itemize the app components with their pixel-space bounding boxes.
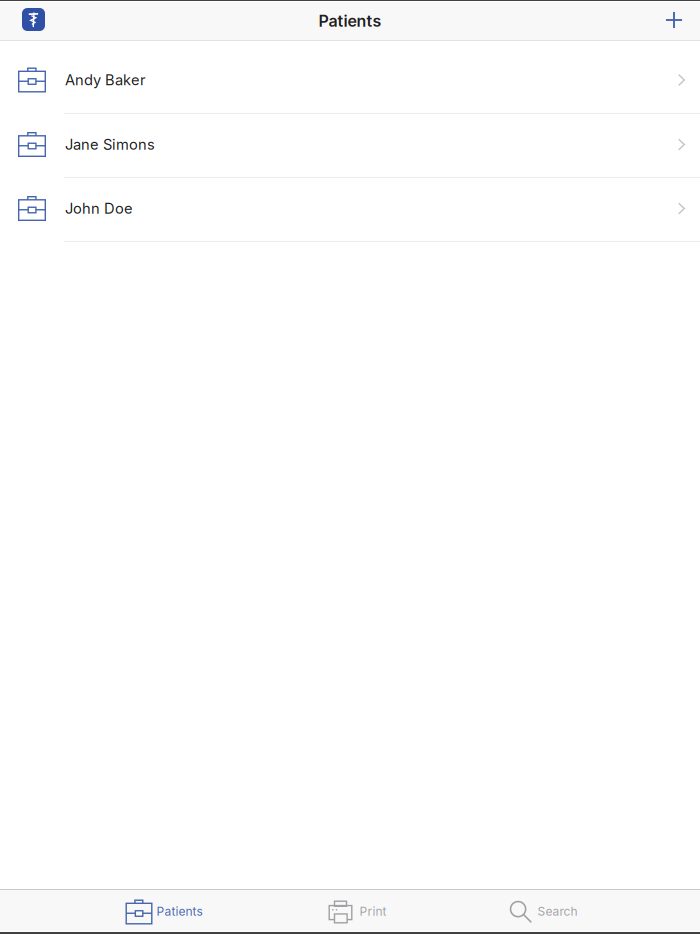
staticText: John Doe [65,200,133,217]
button[interactable]: Search [508,890,577,931]
button[interactable]: Medical Records [0,2,45,40]
button[interactable]: John Doe [0,178,700,242]
staticText: Andy Baker [65,71,146,89]
staticText: Search [537,904,577,919]
button[interactable]: Jane Simons [0,114,700,178]
button[interactable]: Andy Baker [0,49,700,114]
staticText: Print [359,904,386,919]
staticText: Jane Simons [65,136,155,153]
button[interactable]: Patients [125,890,202,931]
staticText: Patients [318,11,381,31]
button[interactable]: Print [328,890,386,931]
staticText: Patients [156,904,202,919]
button[interactable]: Add Patient [665,2,700,40]
